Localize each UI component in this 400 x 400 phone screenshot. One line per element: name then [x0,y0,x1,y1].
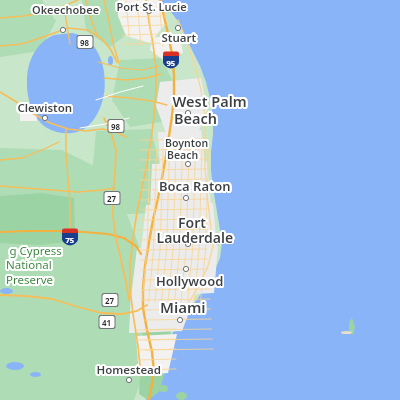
button[interactable]: Map of South Florida [0,0,400,400]
